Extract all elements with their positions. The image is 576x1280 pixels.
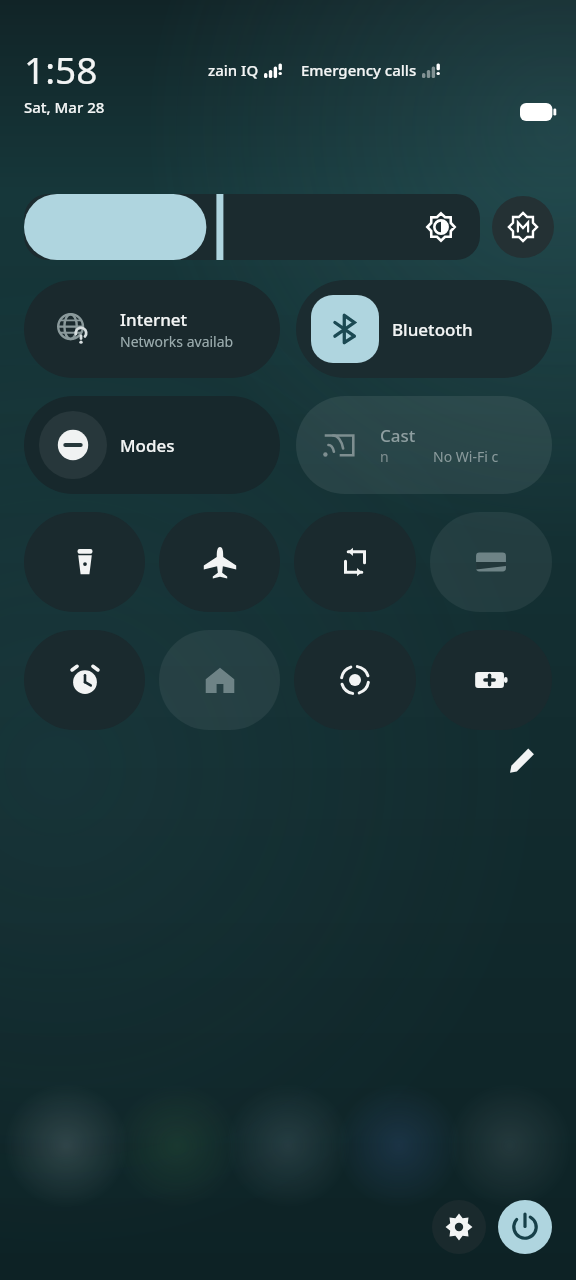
staticText: Networks availab xyxy=(120,332,234,351)
staticText: Modes xyxy=(120,434,175,457)
staticText: Emergency calls xyxy=(301,60,417,80)
staticText: Internet xyxy=(120,308,188,331)
button[interactable]: Edit tiles xyxy=(500,738,544,782)
button[interactable]: Power xyxy=(498,1200,552,1254)
staticText: n xyxy=(380,447,389,466)
staticText: Sat, Mar 28 xyxy=(24,97,105,117)
button[interactable]: Battery saver xyxy=(430,630,552,730)
staticText: Bluetooth xyxy=(392,318,473,341)
button[interactable]: Internet xyxy=(39,280,270,378)
staticText: zain IQ xyxy=(208,60,259,80)
button[interactable]: Settings xyxy=(432,1200,486,1254)
button[interactable]: Flashlight xyxy=(24,512,145,612)
button[interactable]: Auto rotate xyxy=(294,512,416,612)
button[interactable]: Airplane mode xyxy=(159,512,280,612)
button[interactable]: Brightness mode xyxy=(492,196,554,258)
button[interactable]: Modes xyxy=(39,396,270,494)
staticText: Cast xyxy=(380,424,416,447)
button[interactable]: Cast xyxy=(314,396,544,494)
button[interactable]: Brightness xyxy=(24,194,480,260)
button[interactable]: Wallet xyxy=(430,512,552,612)
button[interactable]: Alarm xyxy=(24,630,145,730)
button[interactable]: Screen record xyxy=(294,630,416,730)
button[interactable]: Bluetooth xyxy=(311,280,542,378)
button[interactable]: Home xyxy=(159,630,280,730)
staticText: 1:58 xyxy=(24,44,98,94)
staticText: No Wi-Fi c xyxy=(433,447,499,466)
